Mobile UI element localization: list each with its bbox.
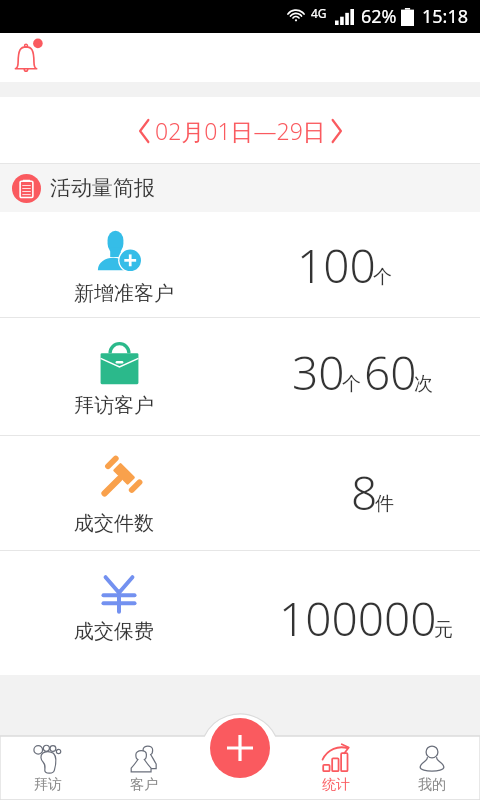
staticText: 60 <box>364 341 417 404</box>
staticText: 个 <box>373 265 392 289</box>
staticText: 62% <box>361 4 397 29</box>
button[interactable]: 我的 <box>384 736 480 800</box>
button[interactable]: Add <box>210 718 270 778</box>
button[interactable]: 成交保费 <box>0 551 480 675</box>
button[interactable]: 活动量简报 <box>12 164 480 212</box>
staticText: 次 <box>414 372 433 396</box>
staticText: 元 <box>434 618 453 642</box>
staticText: 100 <box>297 234 376 297</box>
button[interactable]: 拜访 <box>0 736 96 800</box>
staticText: 15:18 <box>422 4 469 29</box>
button[interactable]: Notifications <box>2 34 50 82</box>
staticText: 拜访客户 <box>74 393 154 418</box>
staticText: 成交保费 <box>74 619 154 644</box>
staticText: 件 <box>375 492 394 516</box>
button[interactable]: 02月01日—29日 <box>0 97 480 163</box>
staticText: 个 <box>342 372 361 396</box>
button[interactable]: 新增准客户 <box>0 212 480 317</box>
staticText: 8 <box>351 461 378 524</box>
staticText: 30 <box>292 341 345 404</box>
button[interactable]: 成交件数 <box>0 436 480 550</box>
button[interactable]: 统计 <box>288 736 384 800</box>
button[interactable]: 客户 <box>96 736 192 800</box>
staticText: 成交件数 <box>74 511 154 536</box>
staticText: 统计 <box>322 776 350 794</box>
staticText: 客户 <box>130 776 158 794</box>
staticText: 02月01日—29日 <box>155 115 326 146</box>
staticText: 活动量简报 <box>50 175 155 201</box>
staticText: 拜访 <box>34 776 62 794</box>
staticText: 新增准客户 <box>74 281 174 306</box>
staticText: 4G <box>311 5 327 21</box>
staticText: 100000 <box>279 587 437 650</box>
staticText: 我的 <box>418 776 446 794</box>
button[interactable]: 拜访客户 <box>0 318 480 435</box>
